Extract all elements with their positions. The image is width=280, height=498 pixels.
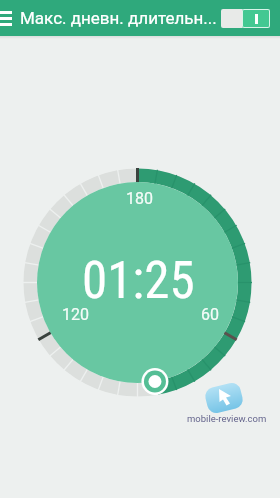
button[interactable] [0, 11, 12, 26]
staticText: mobile-review.com [187, 413, 267, 424]
button[interactable] [221, 9, 270, 28]
staticText: 180 [126, 189, 153, 208]
staticText: Макс. дневн. длительн... [20, 8, 217, 28]
staticText: 120 [62, 305, 89, 324]
staticText: 60 [201, 305, 219, 324]
staticText: 01:25 [82, 251, 195, 311]
